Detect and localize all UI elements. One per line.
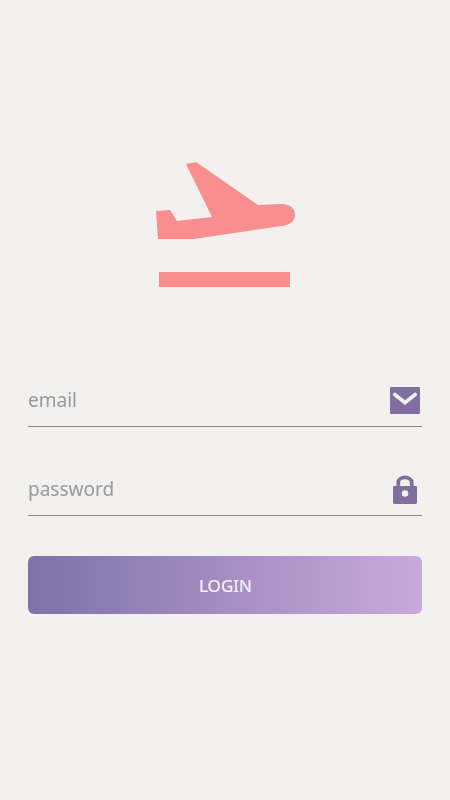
button[interactable]: Password	[388, 472, 422, 506]
button[interactable]: password	[28, 469, 422, 509]
staticText: password	[28, 476, 388, 502]
button[interactable]: LOGIN	[28, 556, 422, 614]
staticText: email	[28, 387, 388, 413]
staticText: LOGIN	[199, 574, 252, 597]
button[interactable]: Email	[388, 383, 422, 417]
button[interactable]: email	[28, 380, 422, 420]
